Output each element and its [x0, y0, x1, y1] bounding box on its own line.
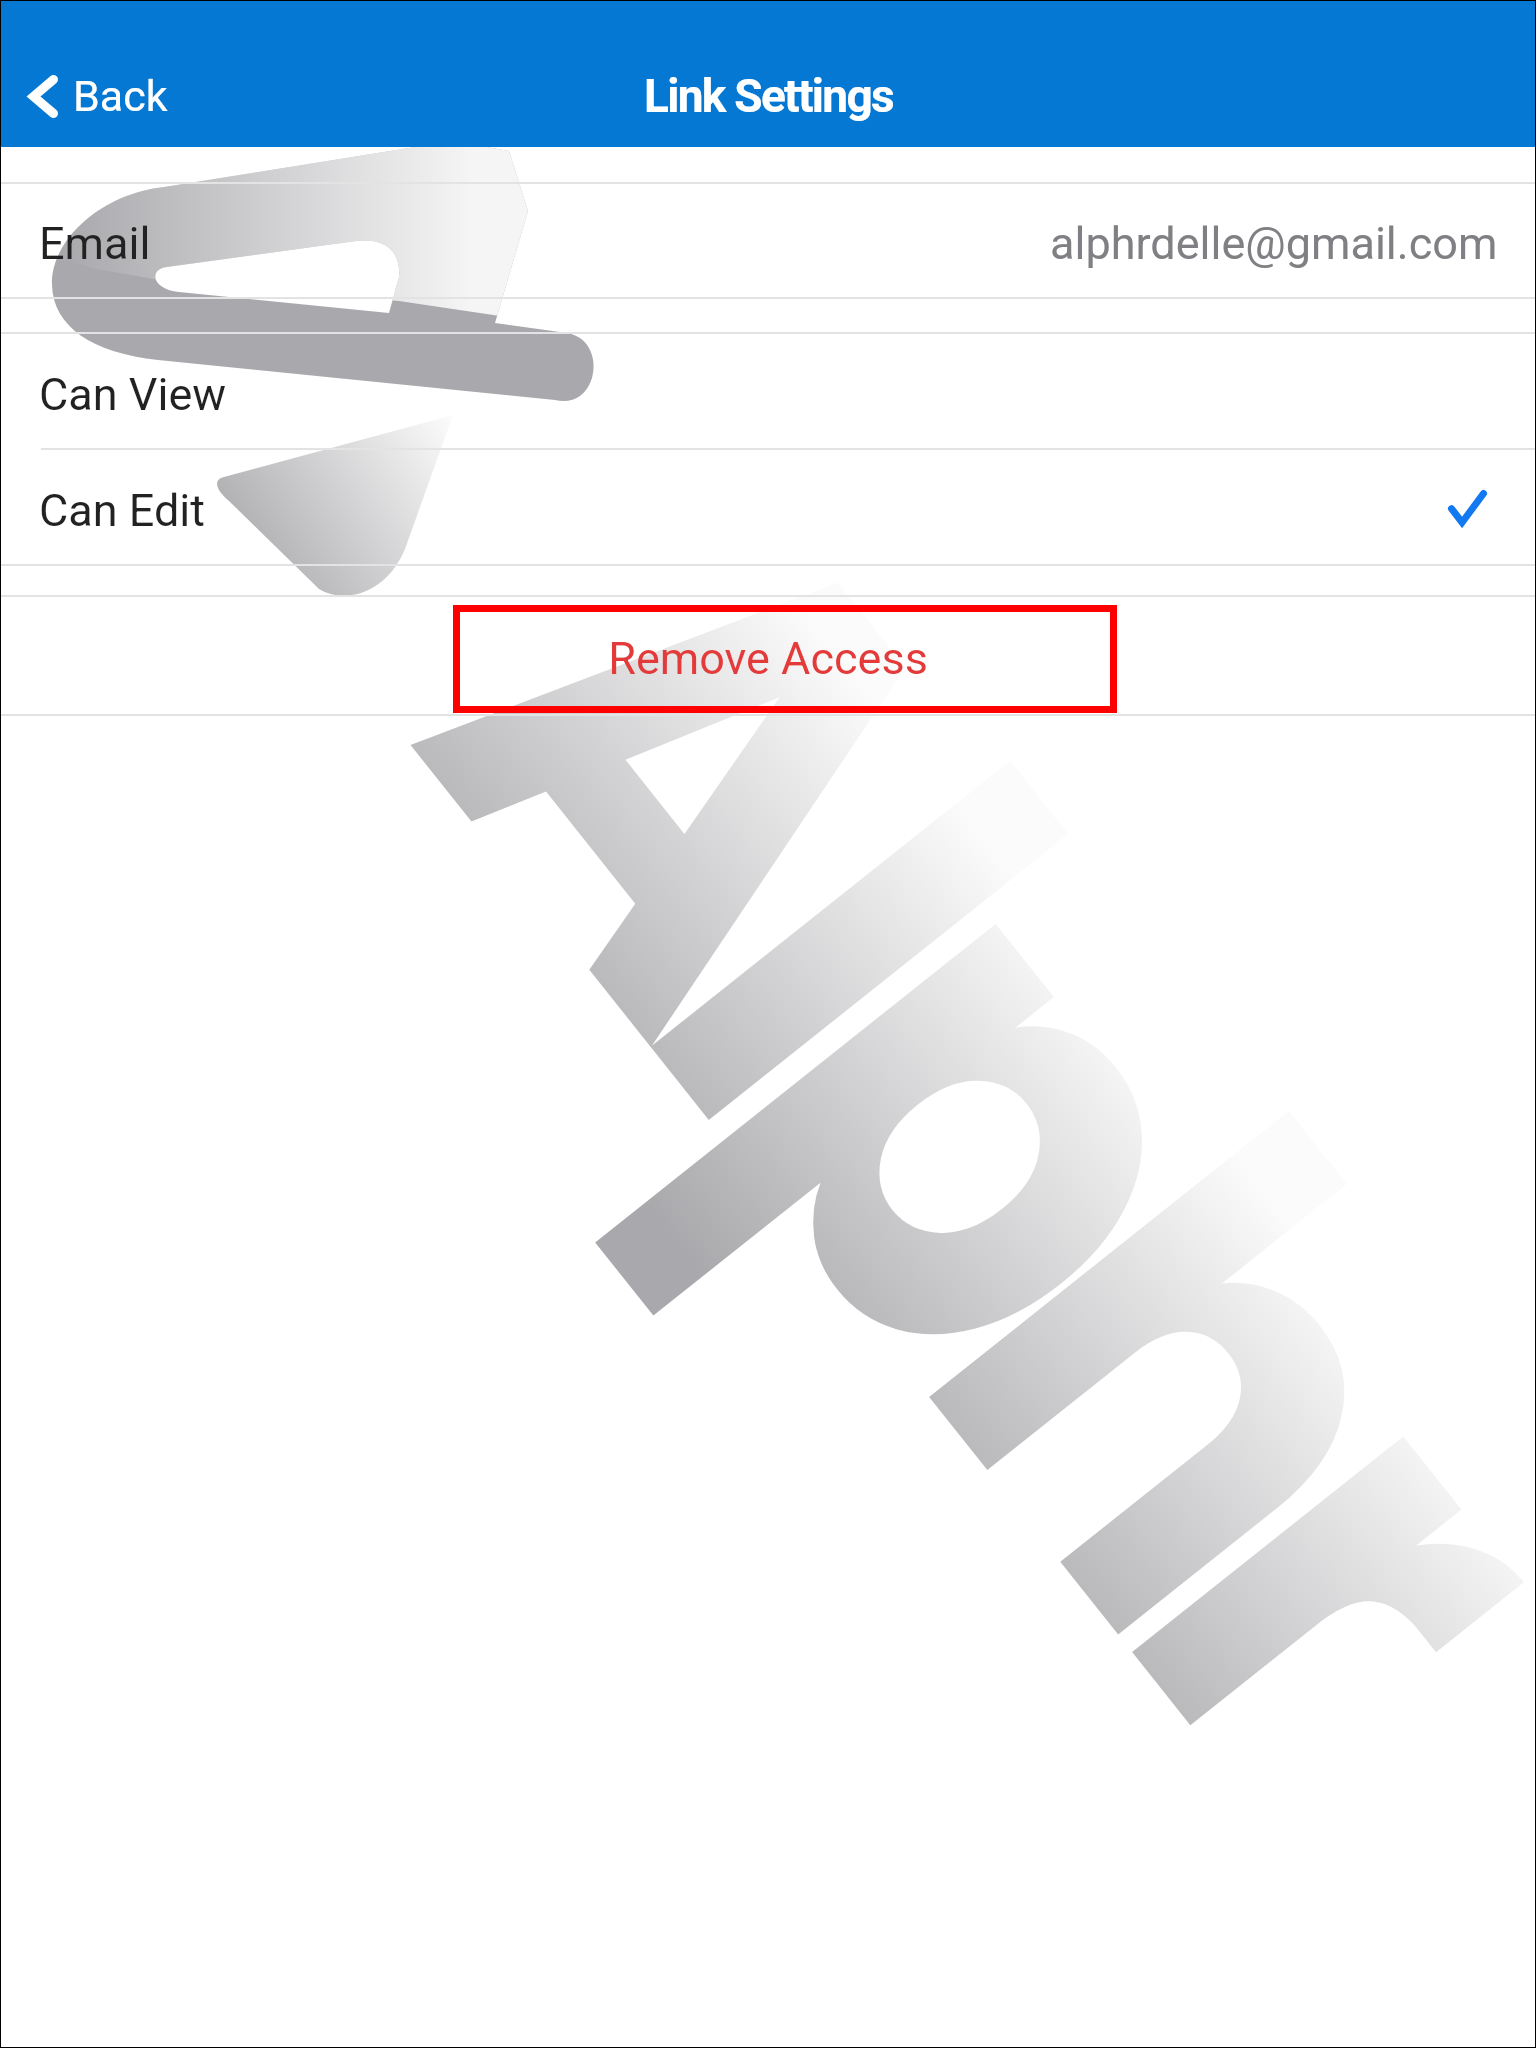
button[interactable]: Email	[1, 184, 1535, 297]
other: Back	[29, 75, 58, 118]
button[interactable]: Remove Access	[1, 597, 1535, 714]
button[interactable]: Can View	[1, 334, 1535, 448]
staticText: Link Settings	[644, 69, 893, 123]
staticText: Can View	[39, 368, 227, 421]
staticText: Email	[39, 217, 151, 270]
staticText: Back	[73, 71, 168, 121]
button[interactable]: Can Edit	[1, 450, 1535, 564]
staticText: Can Edit	[39, 484, 205, 537]
button[interactable]: Back	[1, 63, 198, 129]
staticText: alphrdelle@gmail.com	[1050, 217, 1498, 270]
staticText: Remove Access	[608, 632, 928, 685]
